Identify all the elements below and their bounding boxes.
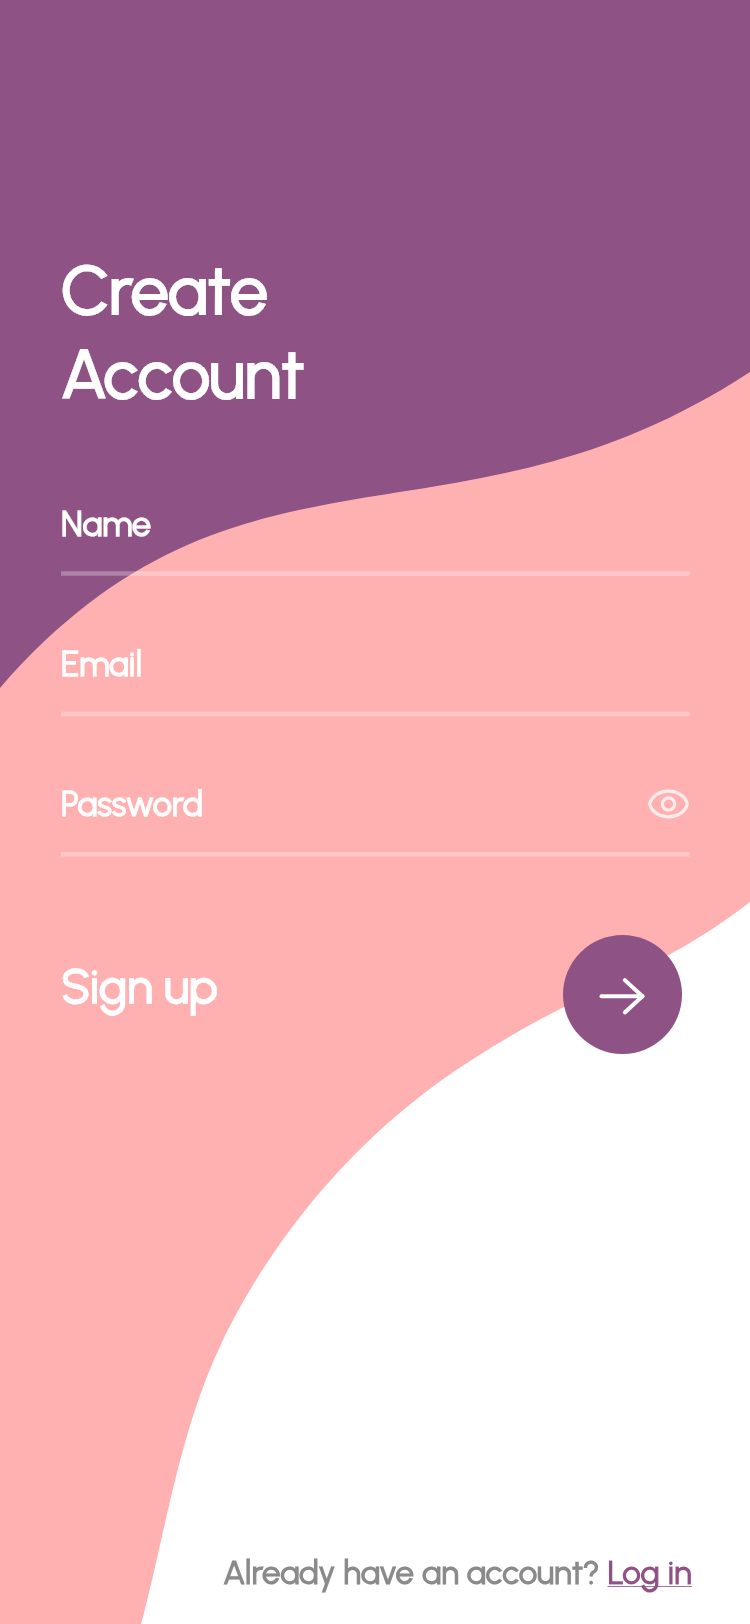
- button[interactable]: Continue: [563, 935, 682, 1054]
- staticText: Password: [61, 784, 204, 825]
- button[interactable]: Already have an account? Log in: [223, 1553, 692, 1593]
- staticText: Email: [61, 644, 142, 685]
- staticText: Create Account: [61, 249, 305, 415]
- staticText: Name: [61, 504, 152, 545]
- staticText: Sign up: [61, 957, 218, 1015]
- staticText: Already have an account? Log in: [223, 1553, 692, 1593]
- button[interactable]: Show password: [638, 774, 698, 834]
